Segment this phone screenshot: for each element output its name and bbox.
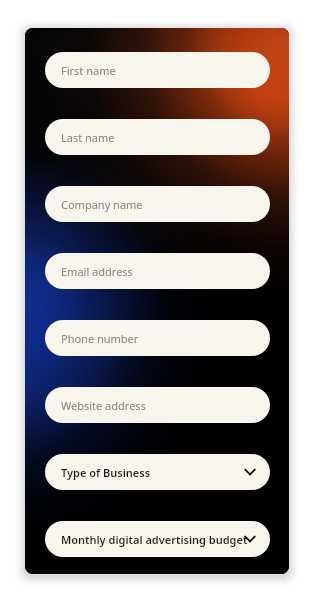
button[interactable]: First name bbox=[45, 52, 270, 88]
button[interactable]: Last name bbox=[45, 119, 270, 155]
other: Expand Type of Business bbox=[242, 464, 258, 480]
staticText: Type of Business bbox=[61, 465, 151, 480]
staticText: First name bbox=[61, 63, 116, 78]
staticText: Company name bbox=[61, 197, 143, 212]
button[interactable]: Email address bbox=[45, 253, 270, 289]
staticText: Email address bbox=[61, 264, 133, 279]
staticText: Monthly digital advertising budget bbox=[61, 532, 248, 547]
button[interactable]: Website address bbox=[45, 387, 270, 423]
other: Expand Monthly digital advertising budge… bbox=[242, 531, 258, 547]
staticText: Phone number bbox=[61, 331, 139, 346]
button[interactable]: Monthly digital advertising budget bbox=[45, 521, 270, 557]
button[interactable]: Company name bbox=[45, 186, 270, 222]
button[interactable]: Type of Business bbox=[45, 454, 270, 490]
staticText: Website address bbox=[61, 398, 146, 413]
button[interactable]: Phone number bbox=[45, 320, 270, 356]
staticText: Last name bbox=[61, 130, 115, 145]
